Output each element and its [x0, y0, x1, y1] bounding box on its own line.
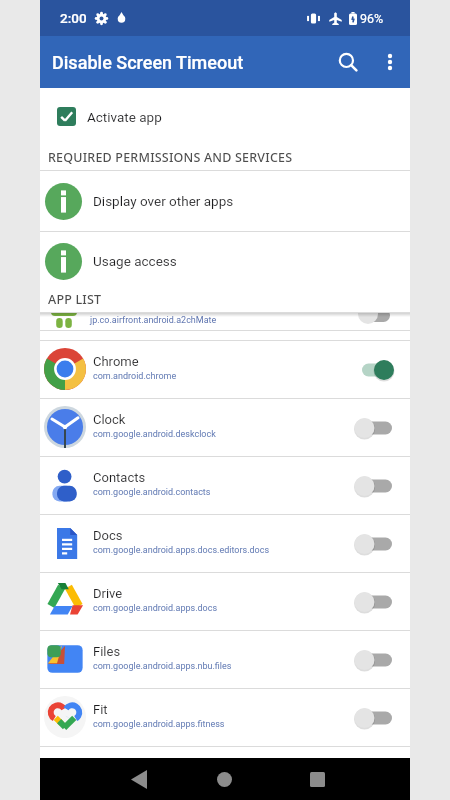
button[interactable]: Clock — [40, 399, 410, 456]
staticText: 2:00 — [60, 10, 87, 26]
button[interactable]: Activate app — [40, 88, 410, 145]
button[interactable]: Contacts — [40, 457, 410, 514]
staticText: jp.co.airfront.android.a2chMate — [90, 315, 217, 326]
button[interactable] — [326, 40, 370, 84]
staticText: APP LIST — [48, 291, 102, 308]
staticText: Activate app — [87, 109, 162, 125]
button[interactable] — [360, 707, 394, 729]
staticText: com.google.android.contacts — [93, 487, 211, 498]
button[interactable] — [204, 759, 244, 799]
staticText: Docs — [93, 528, 123, 543]
staticText: Chrome — [93, 354, 139, 369]
button[interactable] — [360, 533, 394, 555]
button[interactable]: Usage access — [40, 232, 410, 290]
button[interactable]: Chrome — [40, 341, 410, 398]
button[interactable] — [360, 417, 394, 439]
staticText: com.android.chrome — [93, 371, 177, 382]
button[interactable] — [360, 649, 394, 671]
staticText: Display over other apps — [93, 193, 234, 209]
button[interactable]: jp.co.airfront.android.a2chMate — [40, 313, 410, 330]
staticText: com.google.android.apps.docs.editors.doc… — [93, 545, 270, 556]
staticText: Clock — [93, 412, 126, 427]
staticText: com.google.android.apps.fitness — [93, 719, 225, 730]
staticText: Disable Screen Timeout — [52, 52, 244, 73]
staticText: Usage access — [93, 253, 177, 269]
staticText: com.google.android.apps.docs — [93, 603, 218, 614]
staticText: Contacts — [93, 470, 146, 485]
staticText: Fit — [93, 702, 108, 717]
button[interactable]: Display over other apps — [40, 171, 410, 231]
staticText: Files — [93, 644, 121, 659]
button[interactable]: Docs — [40, 515, 410, 572]
button[interactable] — [360, 475, 394, 497]
button[interactable]: Drive — [40, 573, 410, 630]
button[interactable] — [360, 359, 394, 381]
staticText: com.google.android.apps.nbu.files — [93, 661, 232, 672]
staticText: com.google.android.deskclock — [93, 429, 216, 440]
button[interactable] — [370, 42, 410, 82]
staticText: REQUIRED PERMISSIONS AND SERVICES — [48, 149, 293, 166]
button[interactable] — [297, 759, 337, 799]
button[interactable] — [360, 591, 394, 613]
button[interactable] — [119, 759, 159, 799]
button[interactable]: Fit — [40, 689, 410, 746]
button[interactable]: Files — [40, 631, 410, 688]
staticText: Drive — [93, 586, 123, 601]
staticText: 96% — [360, 11, 384, 26]
